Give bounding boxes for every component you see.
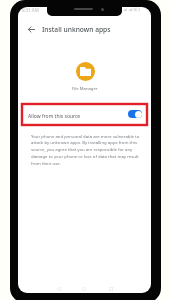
staticText: Install unknown apps — [42, 25, 111, 34]
staticText: 9:31 AM — [22, 7, 39, 13]
button[interactable]: Home — [78, 283, 90, 293]
staticText: Allow from this source — [28, 113, 81, 120]
button[interactable]: Back — [21, 19, 41, 39]
staticText: Your phone and personal data are more vu… — [31, 133, 141, 166]
button[interactable]: Recent apps — [105, 283, 117, 293]
button[interactable]: Allow from this source — [18, 103, 151, 125]
button[interactable]: Back — [53, 283, 65, 293]
staticText: File Manager — [72, 86, 98, 92]
